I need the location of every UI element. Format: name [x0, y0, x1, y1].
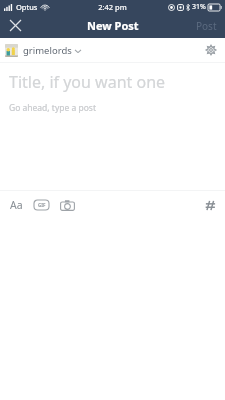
- button[interactable]: Add GIF: [29, 193, 53, 217]
- button[interactable]: Add photo: [55, 193, 79, 217]
- staticText: 2:42 pm: [98, 2, 127, 12]
- staticText: grimelords: [23, 44, 72, 57]
- button[interactable]: Close: [0, 13, 30, 38]
- staticText: Aa: [10, 198, 23, 212]
- staticText: 31%: [192, 2, 206, 12]
- button[interactable]: Post: [188, 14, 225, 38]
- button[interactable]: Title, if you want one: [0, 63, 225, 190]
- staticText: Optus: [16, 2, 38, 12]
- staticText: Post: [196, 19, 217, 33]
- staticText: GIF: [38, 202, 46, 208]
- button[interactable]: Post settings: [199, 38, 223, 62]
- button[interactable]: grimelords: [0, 41, 87, 60]
- button[interactable]: Text formatting: [4, 193, 28, 217]
- button[interactable]: Add tags: [198, 193, 222, 217]
- staticText: Go ahead, type a post: [9, 102, 96, 114]
- staticText: Title, if you want one: [9, 71, 166, 93]
- staticText: New Post: [87, 18, 139, 33]
